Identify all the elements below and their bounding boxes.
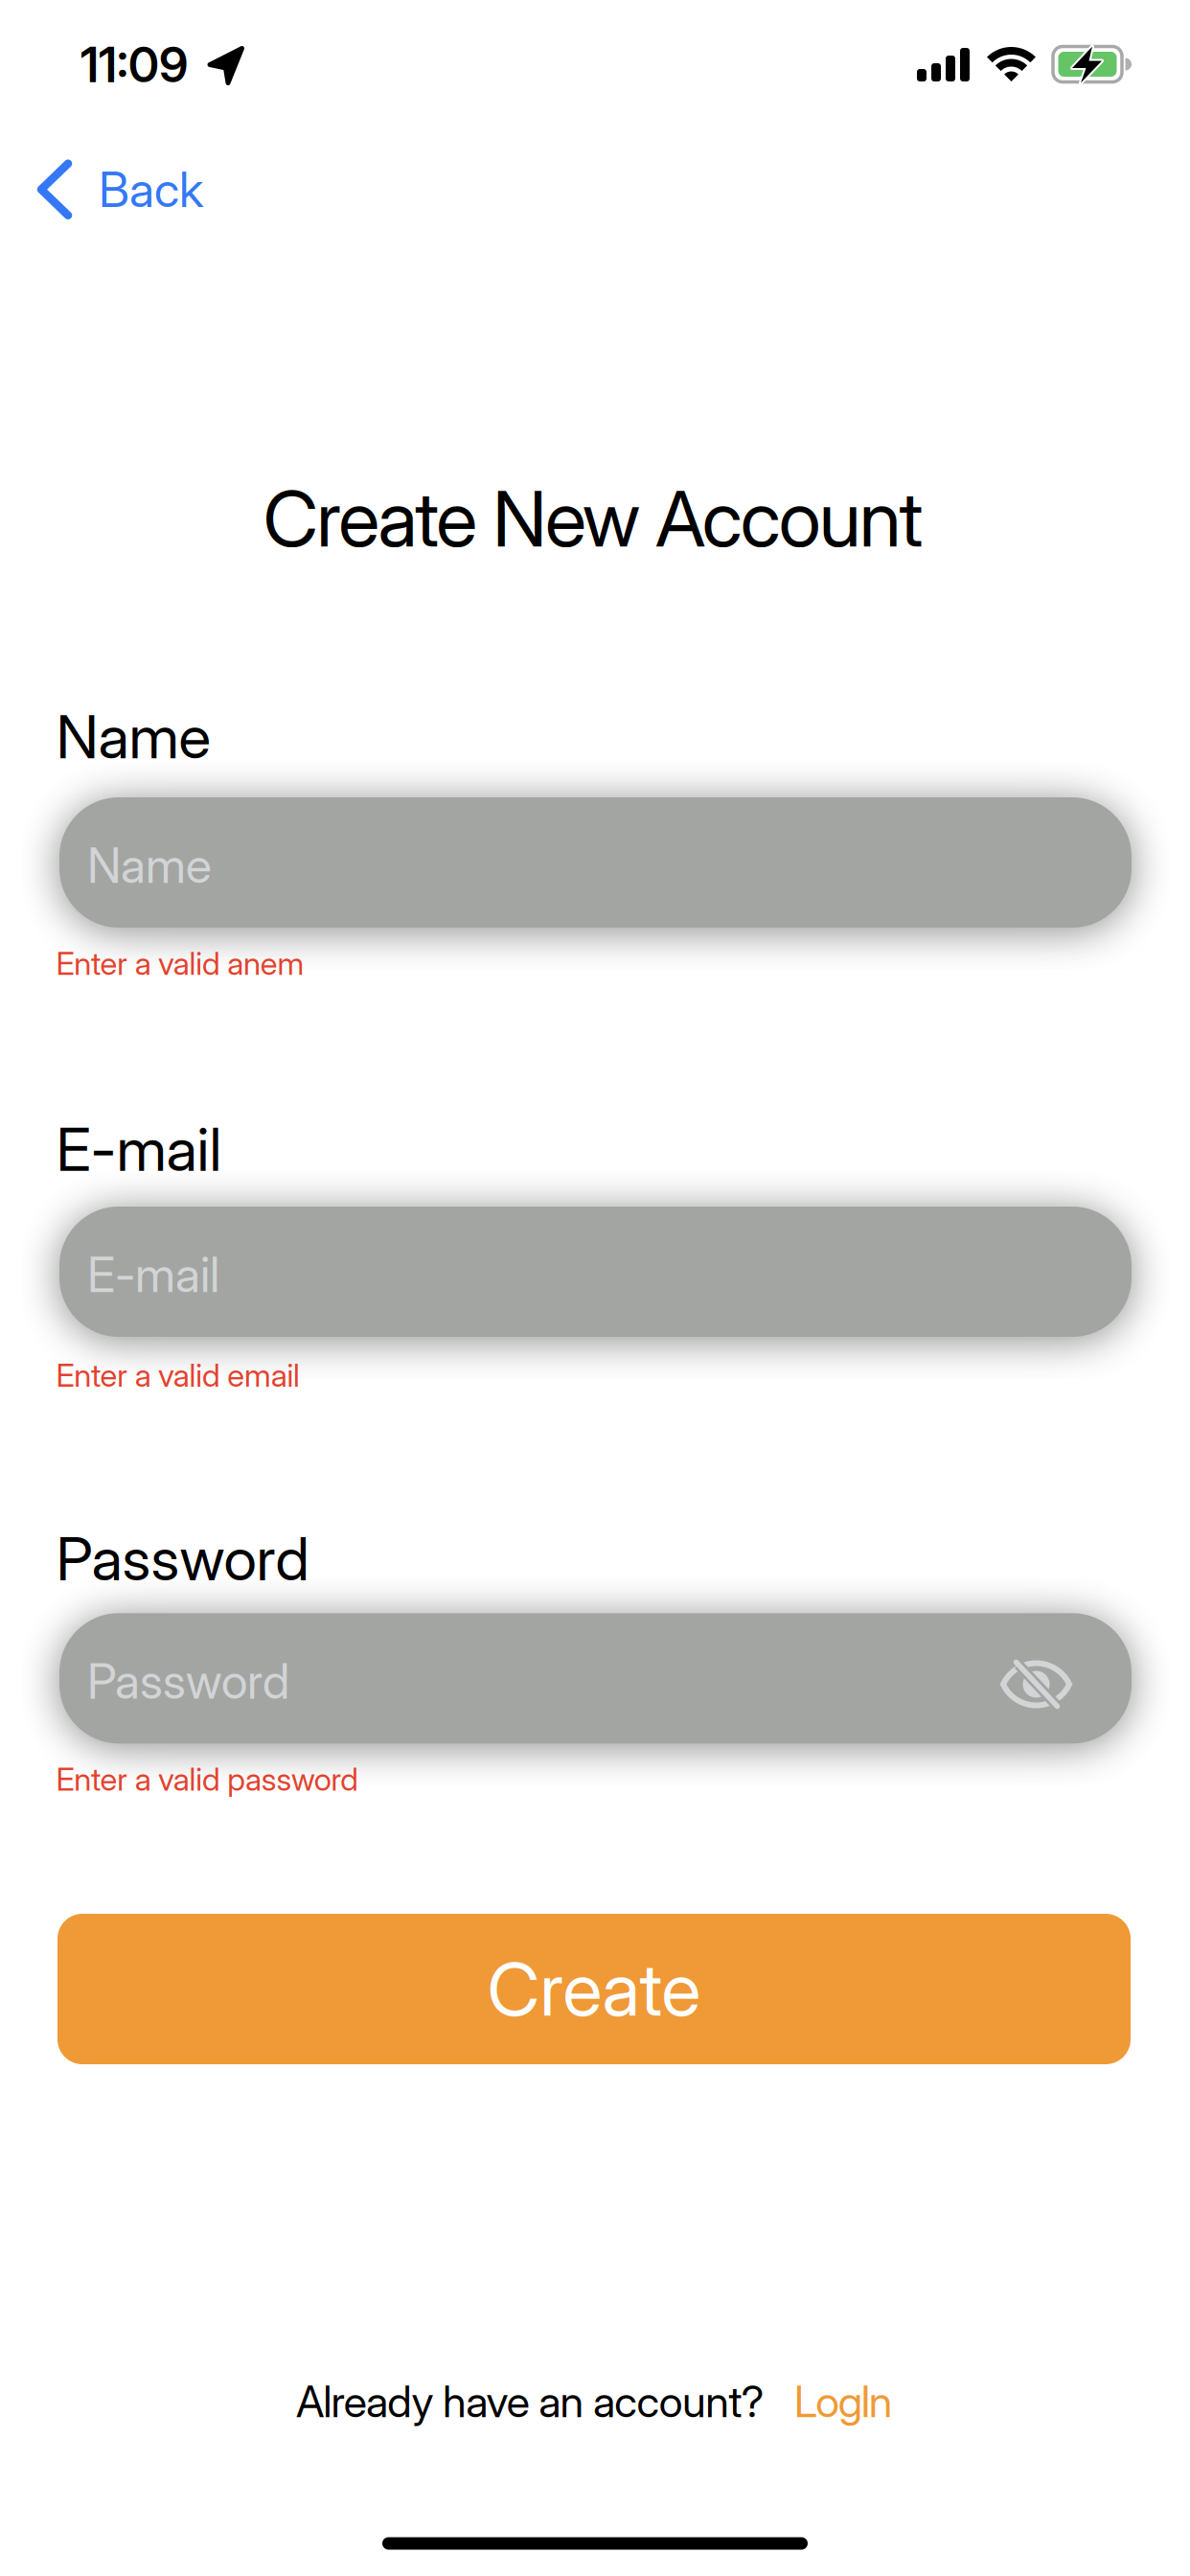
button[interactable]: Show password [999,1657,1074,1711]
staticText: Name [87,836,212,894]
staticText: Already have an account? [296,2375,764,2427]
staticText: Password [56,1522,309,1595]
staticText: Name [56,700,211,773]
button[interactable]: Name [59,797,1132,928]
staticText: E-mail [56,1113,222,1185]
button[interactable]: Back [38,159,290,220]
staticText: Back [99,161,203,218]
staticText: Enter a valid email [56,1356,300,1394]
staticText: Password [87,1652,289,1710]
staticText: Create New Account [263,472,923,565]
button[interactable]: LogIn [794,2375,893,2427]
staticText: Create [487,1945,701,2033]
button[interactable]: E-mail [59,1207,1132,1337]
staticText: Enter a valid anem [56,944,304,982]
button[interactable]: Create [57,1914,1131,2064]
staticText: LogIn [794,2375,893,2427]
staticText: 11:09 [80,36,188,94]
staticText: Enter a valid password [56,1760,359,1798]
staticText: E-mail [87,1246,219,1304]
button[interactable]: Password [59,1613,1132,1743]
